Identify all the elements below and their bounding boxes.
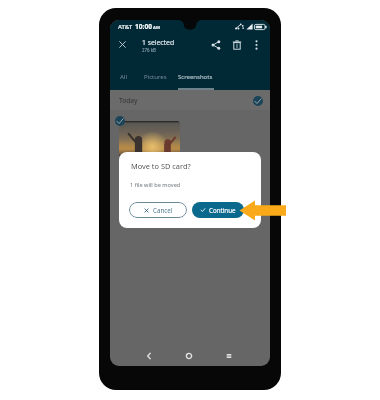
button[interactable]: Back (144, 351, 154, 361)
staticText: Continue (209, 206, 236, 214)
staticText: All (120, 73, 127, 81)
button[interactable]: All (116, 70, 131, 84)
staticText: Move to SD card? (131, 161, 191, 171)
button[interactable]: Selected (115, 116, 125, 126)
button[interactable]: Pictures (140, 70, 171, 84)
button[interactable]: Cancel (129, 202, 187, 218)
staticText: Today (119, 96, 138, 105)
staticText: 1 selected (142, 38, 175, 47)
button[interactable]: Share (211, 40, 221, 50)
staticText: 1 file will be moved (130, 181, 181, 189)
staticText: 276 kB (142, 47, 156, 53)
button[interactable]: Close (118, 40, 127, 49)
button[interactable]: Delete (232, 40, 242, 50)
staticText: AM (153, 25, 160, 31)
button[interactable]: More options (255, 40, 258, 50)
button[interactable]: Screenshots (174, 70, 217, 84)
button[interactable]: Photo (119, 121, 180, 157)
staticText: AT&T (118, 23, 133, 31)
staticText: 10:00 (135, 22, 152, 31)
staticText: Pictures (144, 73, 167, 81)
staticText: Screenshots (178, 73, 213, 81)
button[interactable]: Home (184, 351, 194, 361)
button[interactable]: Continue (192, 202, 244, 218)
button[interactable]: Recent apps (224, 351, 234, 361)
staticText: Cancel (153, 206, 173, 214)
other: Pointer to Continue (239, 200, 286, 221)
button[interactable]: Deselect all (253, 96, 263, 106)
